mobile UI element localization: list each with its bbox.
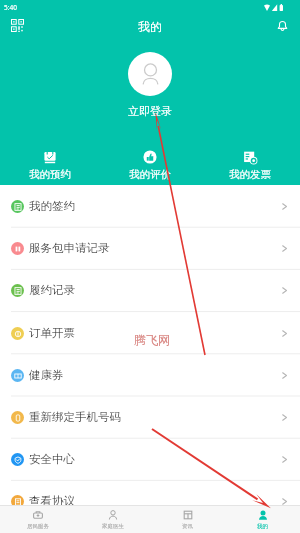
button[interactable]: 我的 (225, 506, 300, 530)
staticText: 重新绑定手机号码 (29, 410, 121, 424)
staticText: 立即登录 (128, 104, 172, 118)
button[interactable]: Notifications (274, 17, 291, 34)
button[interactable]: 服务包申请记录 (0, 227, 300, 269)
staticText: 5:40 (4, 3, 17, 12)
staticText: 居民服务 (27, 523, 49, 530)
staticText: 履约记录 (29, 283, 75, 297)
button[interactable]: 我的预约 (0, 150, 100, 181)
staticText: 资讯 (182, 523, 193, 530)
staticText: 我的预约 (29, 168, 71, 181)
staticText: 查看协议 (29, 494, 75, 508)
staticText: 我的签约 (29, 199, 75, 213)
button[interactable]: 安全中心 (0, 438, 300, 480)
button[interactable]: 履约记录 (0, 269, 300, 311)
staticText: 订单开票 (29, 326, 75, 340)
staticText: 安全中心 (29, 452, 75, 466)
button[interactable]: 健康券 (0, 354, 300, 396)
button[interactable]: 我的签约 (0, 185, 300, 227)
staticText: 健康券 (29, 368, 64, 382)
staticText: 我的发票 (229, 168, 271, 181)
staticText: 我的 (257, 523, 268, 530)
staticText: 服务包申请记录 (29, 241, 110, 255)
button[interactable]: Avatar (128, 52, 172, 96)
button[interactable]: 居民服务 (0, 506, 75, 530)
button[interactable]: 家庭医生 (75, 506, 150, 530)
button[interactable]: 我的发票 (200, 150, 300, 181)
button[interactable]: 资讯 (150, 506, 225, 530)
button[interactable]: 重新绑定手机号码 (0, 396, 300, 438)
staticText: 家庭医生 (102, 523, 124, 530)
button[interactable]: 立即登录 (118, 103, 182, 119)
button[interactable]: 查看协议 (0, 480, 300, 522)
button[interactable]: Scan QR code (9, 17, 26, 34)
button[interactable]: 订单开票 (0, 312, 300, 354)
button[interactable]: 我的评价 (100, 150, 200, 181)
staticText: 腾飞网 (134, 332, 170, 347)
staticText: 我的评价 (129, 168, 171, 181)
staticText: 我的 (138, 19, 162, 34)
